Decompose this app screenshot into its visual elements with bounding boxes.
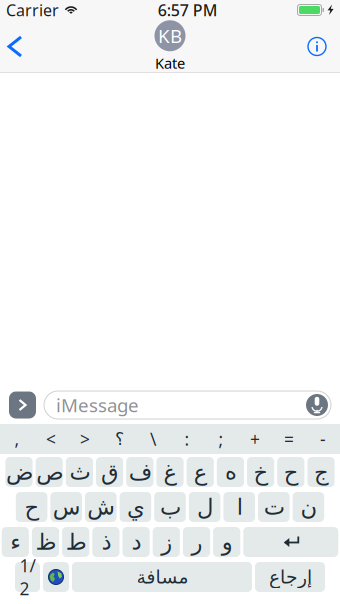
staticText: د — [131, 529, 141, 555]
button[interactable]: ث — [66, 457, 93, 487]
staticText: ف — [128, 459, 151, 485]
button[interactable]: + — [238, 424, 272, 454]
button[interactable]: Dictate — [306, 394, 328, 416]
button[interactable]: غ — [156, 457, 184, 487]
staticText: ق — [101, 459, 119, 485]
button[interactable]: ش — [85, 492, 117, 522]
button[interactable]: - — [306, 424, 340, 454]
button[interactable]: Apps — [9, 391, 36, 418]
staticText: 6:57 PM — [158, 0, 218, 21]
button[interactable]: ق — [96, 457, 123, 487]
button[interactable]: ض — [5, 457, 33, 487]
button[interactable] — [43, 562, 69, 592]
staticText: ; — [218, 427, 223, 450]
button[interactable] — [243, 527, 338, 557]
button[interactable]: Details — [293, 20, 340, 72]
button[interactable]: ح — [16, 492, 47, 522]
staticText: ل — [197, 494, 213, 520]
staticText: Kate — [155, 53, 185, 73]
button[interactable]: 1/2 — [15, 562, 40, 592]
button[interactable]: : — [170, 424, 204, 454]
staticText: ع — [193, 459, 207, 485]
staticText: ء — [10, 529, 21, 555]
staticText: ؟ — [114, 429, 123, 449]
button[interactable]: ف — [126, 457, 153, 487]
staticText: ح — [283, 459, 298, 485]
staticText: > — [80, 427, 90, 450]
staticText: ط — [65, 529, 86, 555]
staticText: ث — [69, 459, 90, 485]
staticText: ن — [300, 494, 317, 520]
button[interactable]: ت — [258, 492, 290, 522]
button[interactable]: ؟ — [102, 424, 136, 454]
button[interactable]: \ — [136, 424, 170, 454]
button[interactable]: > — [68, 424, 102, 454]
button[interactable]: ذ — [92, 527, 119, 557]
staticText: ر — [191, 529, 202, 555]
staticText: ش — [87, 494, 115, 520]
button[interactable]: ل — [189, 492, 220, 522]
button[interactable]: إرجاع — [255, 562, 325, 592]
button[interactable]: د — [122, 527, 150, 557]
staticText: ب — [159, 494, 180, 520]
button[interactable]: ج — [307, 457, 335, 487]
staticText: , — [14, 427, 19, 450]
staticText: = — [284, 427, 294, 450]
button[interactable]: = — [272, 424, 306, 454]
button[interactable]: ظ — [32, 527, 59, 557]
staticText: ح — [24, 494, 39, 520]
staticText: ص — [36, 459, 63, 485]
button[interactable]: ا — [223, 492, 255, 522]
staticText: ي — [126, 494, 144, 520]
staticText: < — [46, 427, 56, 450]
button[interactable]: ه — [217, 457, 244, 487]
button[interactable]: KB — [154, 20, 185, 73]
button[interactable]: ط — [62, 527, 89, 557]
staticText: إرجاع — [268, 566, 311, 588]
staticText: ذ — [101, 529, 111, 555]
staticText: 1/2 — [19, 554, 35, 600]
staticText: iMessage — [56, 393, 139, 417]
button[interactable]: ء — [2, 527, 29, 557]
button[interactable]: Back — [0, 20, 35, 72]
button[interactable]: مسافة — [72, 562, 252, 592]
staticText: KB — [158, 23, 182, 48]
button[interactable]: و — [213, 527, 240, 557]
button[interactable]: س — [50, 492, 82, 522]
staticText: س — [52, 494, 80, 520]
staticText: \ — [150, 427, 156, 450]
staticText: و — [221, 529, 232, 555]
button[interactable]: ب — [154, 492, 186, 522]
staticText: ج — [313, 459, 328, 485]
button[interactable]: ص — [36, 457, 63, 487]
staticText: ه — [224, 459, 236, 485]
staticText: + — [250, 427, 260, 450]
staticText: ا — [236, 494, 242, 520]
button[interactable]: ز — [153, 527, 180, 557]
staticText: خ — [253, 459, 268, 485]
button[interactable]: خ — [247, 457, 274, 487]
staticText: مسافة — [136, 566, 188, 588]
staticText: ت — [263, 494, 284, 520]
staticText: ظ — [35, 529, 56, 555]
button[interactable]: ي — [120, 492, 151, 522]
staticText: ز — [161, 529, 172, 555]
button[interactable]: ن — [293, 492, 324, 522]
button[interactable]: ع — [187, 457, 214, 487]
button[interactable]: ; — [204, 424, 238, 454]
staticText: - — [320, 427, 326, 450]
staticText: ض — [5, 459, 32, 485]
button[interactable]: , — [0, 424, 34, 454]
button[interactable]: ر — [183, 527, 210, 557]
staticText: Carrier — [6, 0, 59, 21]
staticText: : — [184, 427, 189, 450]
button[interactable]: < — [34, 424, 68, 454]
staticText: غ — [163, 459, 177, 485]
button[interactable]: ح — [277, 457, 304, 487]
